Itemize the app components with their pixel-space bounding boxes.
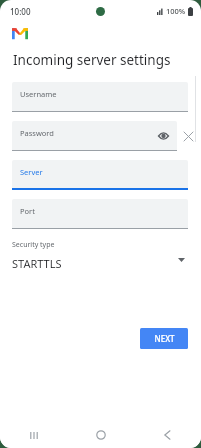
button[interactable]: NEXT (140, 328, 188, 349)
staticText: Username (20, 89, 57, 99)
staticText: Security type (12, 240, 55, 250)
staticText: Incoming server settings (13, 51, 171, 69)
staticText: NEXT (154, 333, 175, 344)
button[interactable]: Clear password (179, 127, 197, 145)
button[interactable]: Home (67, 422, 134, 448)
staticText: 100% (166, 6, 186, 16)
other: Select security type (174, 253, 188, 267)
button[interactable]: Username (12, 82, 188, 112)
button[interactable]: Password (12, 121, 177, 151)
button[interactable]: Back (134, 422, 201, 448)
staticText: Password (20, 128, 54, 138)
staticText: Server (20, 167, 43, 177)
staticText: STARTTLS (12, 256, 62, 271)
staticText: Port (20, 206, 35, 216)
staticText: 10:00 (10, 6, 31, 17)
button[interactable]: Security type (12, 240, 188, 271)
button[interactable]: Server (12, 160, 188, 190)
button[interactable]: Port (12, 199, 188, 229)
button[interactable]: Recent apps (0, 422, 67, 448)
button[interactable]: Show password (155, 128, 171, 144)
